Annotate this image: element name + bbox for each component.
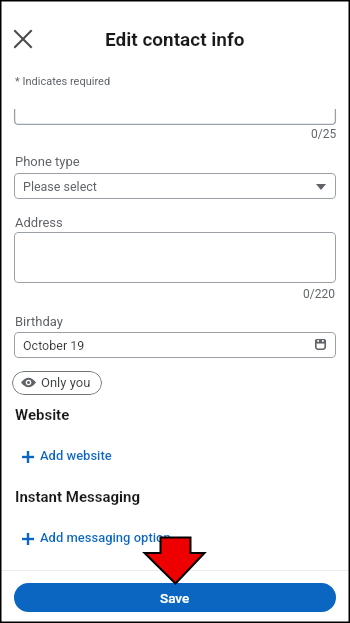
staticText: Instant Messaging bbox=[15, 488, 141, 506]
button[interactable]: Pick date bbox=[315, 339, 327, 351]
button[interactable]: October 19 bbox=[14, 332, 336, 358]
staticText: Phone type bbox=[15, 154, 80, 169]
button[interactable]: Close bbox=[5, 21, 41, 57]
staticText: Website bbox=[15, 406, 70, 424]
staticText: * Indicates required bbox=[15, 75, 111, 88]
staticText: Add website bbox=[40, 448, 112, 463]
button[interactable] bbox=[14, 232, 336, 283]
button[interactable]: Only you bbox=[12, 371, 102, 395]
staticText: Please select bbox=[23, 179, 97, 194]
staticText: 0/220 bbox=[303, 287, 335, 301]
staticText: Address bbox=[15, 215, 63, 230]
button[interactable] bbox=[14, 109, 336, 125]
button[interactable]: Add website bbox=[16, 445, 118, 468]
staticText: Birthday bbox=[15, 314, 63, 329]
staticText: Add messaging option bbox=[40, 530, 171, 545]
button[interactable]: Add messaging option bbox=[16, 527, 177, 550]
staticText: Only you bbox=[41, 375, 91, 390]
staticText: Save bbox=[160, 590, 190, 606]
staticText: October 19 bbox=[23, 338, 85, 353]
button[interactable]: Save bbox=[14, 583, 336, 612]
button[interactable]: Please select bbox=[14, 173, 336, 199]
staticText: Edit contact info bbox=[105, 28, 245, 50]
staticText: 0/25 bbox=[311, 127, 337, 141]
